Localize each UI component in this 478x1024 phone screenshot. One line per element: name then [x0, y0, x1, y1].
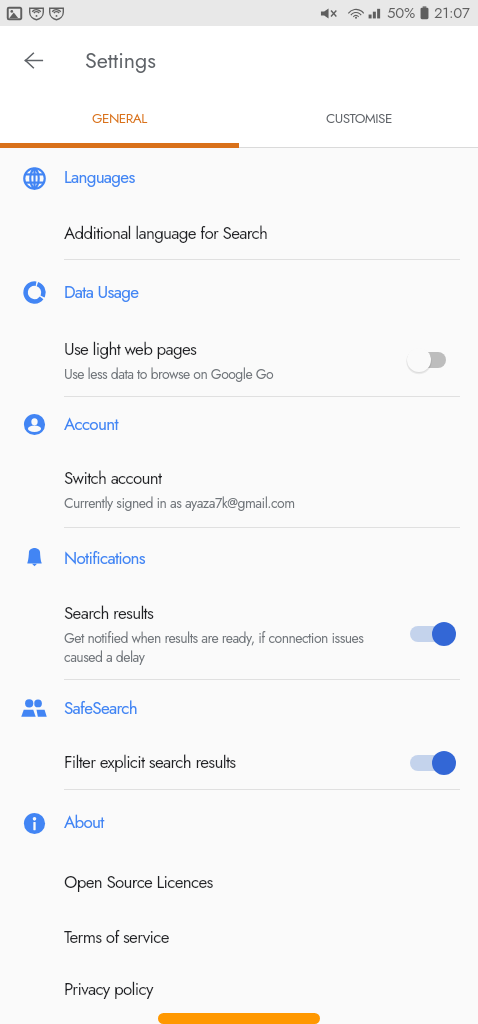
- staticText: Use light web pages: [64, 337, 197, 362]
- button[interactable]: Notifications: [0, 528, 478, 588]
- button[interactable]: Switch account: [0, 451, 478, 527]
- button[interactable]: Action: [158, 1013, 320, 1024]
- button[interactable]: Account: [0, 397, 478, 451]
- staticText: Search results: [64, 601, 154, 626]
- button[interactable]: Privacy policy: [0, 965, 478, 1013]
- staticText: 50%: [387, 2, 416, 24]
- staticText: Account: [64, 412, 118, 437]
- button[interactable]: Filter explicit search results: [0, 736, 478, 789]
- staticText: Languages: [64, 165, 135, 190]
- button[interactable]: Toggle off: [408, 347, 456, 373]
- button[interactable]: CUSTOMISE: [239, 94, 478, 143]
- staticText: Get notified when results are ready, if …: [64, 628, 364, 667]
- button[interactable]: SafeSearch: [0, 680, 478, 736]
- staticText: Filter explicit search results: [64, 750, 236, 775]
- staticText: Use less data to browse on Google Go: [64, 364, 274, 384]
- staticText: Data Usage: [64, 280, 139, 305]
- staticText: About: [64, 810, 104, 835]
- button[interactable]: GENERAL: [0, 94, 239, 143]
- staticText: 21:07: [434, 2, 470, 24]
- staticText: GENERAL: [92, 109, 147, 129]
- staticText: SafeSearch: [64, 696, 137, 721]
- button[interactable]: Languages: [0, 148, 478, 207]
- button[interactable]: Additional language for Search: [0, 207, 478, 259]
- button[interactable]: Open Source Licences: [0, 855, 478, 910]
- button[interactable]: Terms of service: [0, 910, 478, 965]
- staticText: Currently signed in as ayaza7k@gmail.com: [64, 493, 295, 513]
- staticText: Terms of service: [64, 925, 169, 950]
- staticText: Privacy policy: [64, 977, 153, 1002]
- staticText: Notifications: [64, 546, 145, 571]
- button[interactable]: Use light web pages: [0, 324, 478, 396]
- staticText: Switch account: [64, 466, 162, 491]
- button[interactable]: Search results: [0, 588, 478, 679]
- staticText: Open Source Licences: [64, 870, 213, 895]
- button[interactable]: Toggle on: [408, 750, 456, 776]
- button[interactable]: Toggle on: [408, 621, 456, 647]
- button[interactable]: Data Usage: [0, 260, 478, 324]
- staticText: CUSTOMISE: [326, 109, 392, 129]
- staticText: Settings: [85, 45, 156, 76]
- staticText: Additional language for Search: [64, 221, 268, 246]
- button[interactable]: About: [0, 790, 478, 855]
- button[interactable]: Back: [12, 39, 54, 81]
